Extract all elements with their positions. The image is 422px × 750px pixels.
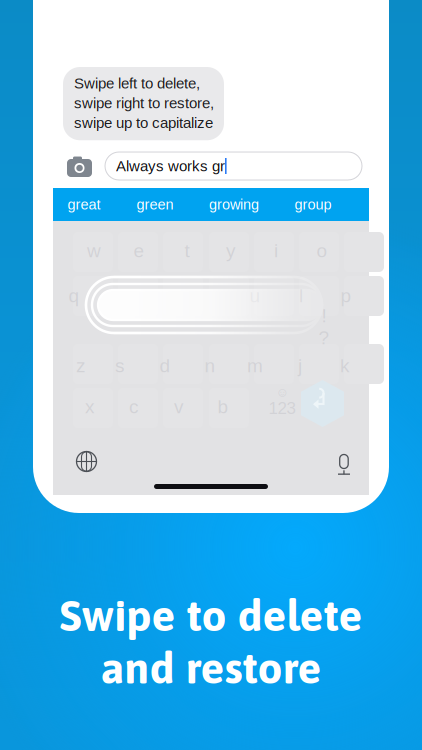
staticText: e — [133, 240, 144, 261]
button[interactable]: great — [48, 188, 120, 221]
staticText: 123 — [268, 398, 295, 417]
staticText: q — [68, 285, 79, 306]
staticText: n — [204, 355, 215, 376]
staticText: ! — [321, 305, 326, 326]
staticText: y — [226, 240, 236, 261]
staticText: Always works gr — [116, 158, 225, 174]
staticText: o — [316, 240, 327, 261]
staticText: green — [136, 196, 173, 213]
staticText: ? — [318, 327, 329, 348]
staticText: Swipe left to delete, — [74, 75, 200, 92]
staticText: c — [129, 396, 139, 417]
staticText: growing — [209, 196, 259, 213]
staticText: Swipe to delete — [59, 590, 362, 640]
button[interactable]: growing — [198, 188, 270, 221]
staticText: m — [247, 355, 263, 376]
staticText: p — [340, 285, 351, 306]
staticText: d — [159, 355, 170, 376]
button[interactable]: group — [277, 188, 349, 221]
staticText: w — [87, 240, 101, 261]
staticText: group — [294, 196, 331, 213]
staticText: x — [85, 396, 95, 417]
staticText: i — [274, 240, 278, 261]
staticText: swipe right to restore, — [74, 95, 214, 112]
staticText: v — [174, 396, 184, 417]
staticText: z — [76, 355, 86, 376]
staticText: s — [115, 355, 125, 376]
staticText: u — [249, 285, 260, 306]
staticText: l — [299, 285, 303, 306]
staticText: swipe up to capitalize — [74, 114, 213, 131]
staticText: j — [298, 355, 302, 376]
staticText: great — [67, 196, 100, 213]
button[interactable]: green — [119, 188, 191, 221]
staticText: k — [340, 355, 350, 376]
staticText: t — [184, 240, 189, 261]
staticText: b — [217, 396, 228, 417]
staticText: and restore — [100, 642, 321, 693]
